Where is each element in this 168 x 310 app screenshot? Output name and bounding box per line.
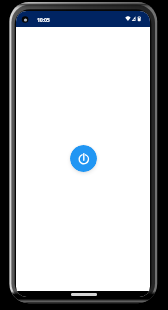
button[interactable]: Power <box>70 145 97 172</box>
staticText: 10:05 <box>37 16 50 23</box>
button[interactable]: Home gesture bar <box>71 293 97 296</box>
